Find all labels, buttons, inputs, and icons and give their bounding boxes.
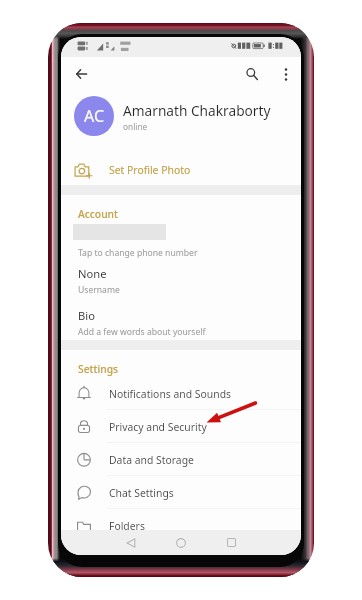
staticText: Data and Storage: [109, 453, 194, 467]
button[interactable]: Privacy and Security: [61, 410, 301, 443]
button[interactable]: Recent apps: [217, 530, 245, 555]
staticText: Chat Settings: [109, 486, 174, 500]
staticText: Username: [78, 284, 120, 296]
staticText: online: [123, 121, 148, 132]
button[interactable]: Folders: [61, 509, 301, 542]
button[interactable]: None: [61, 261, 301, 301]
button[interactable]: Back: [117, 530, 145, 555]
staticText: Account: [78, 207, 119, 221]
staticText: Notifications and Sounds: [109, 387, 232, 401]
button[interactable]: More options: [269, 57, 301, 91]
staticText: Privacy and Security: [109, 420, 207, 434]
button[interactable]: Home: [167, 530, 195, 555]
staticText: Add a few words about yourself: [78, 326, 206, 338]
staticText: Bio: [78, 308, 95, 323]
staticText: None: [78, 266, 107, 281]
staticText: Amarnath Chakraborty: [123, 101, 271, 120]
button[interactable]: AC: [61, 90, 301, 142]
button[interactable]: Back: [64, 57, 98, 91]
staticText: Settings: [78, 362, 119, 376]
staticText: Tap to change phone number: [78, 247, 198, 259]
button[interactable]: Chat Settings: [61, 476, 301, 509]
staticText: Folders: [109, 519, 145, 533]
button[interactable]: Bio: [61, 303, 301, 343]
button[interactable]: Set Profile Photo: [61, 152, 301, 188]
staticText: Set Profile Photo: [109, 163, 191, 177]
button[interactable]: Tap to change phone number: [61, 220, 301, 267]
button[interactable]: Search: [235, 57, 269, 91]
button[interactable]: Notifications and Sounds: [61, 377, 301, 410]
staticText: AC: [84, 105, 105, 127]
button[interactable]: Data and Storage: [61, 443, 301, 476]
